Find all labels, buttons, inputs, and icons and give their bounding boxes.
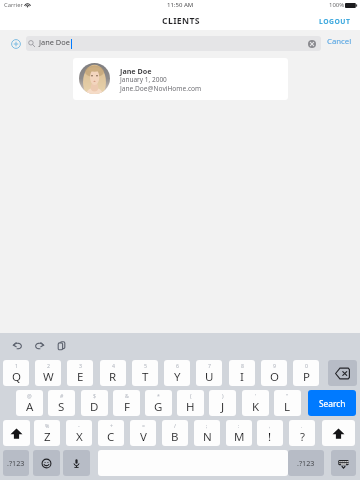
button[interactable]: Undo: [11, 339, 24, 352]
staticText: Carrier: [4, 1, 23, 9]
button[interactable]: ': [242, 390, 269, 416]
button[interactable]: .?123: [288, 450, 324, 476]
staticText: T: [142, 369, 149, 385]
staticText: D: [90, 399, 99, 415]
staticText: Search: [319, 398, 346, 409]
button[interactable]: 4: [100, 360, 126, 386]
button[interactable]: 8: [229, 360, 255, 386]
staticText: I: [240, 369, 244, 385]
staticText: $: [93, 392, 96, 399]
staticText: Jane.Doe@NoviHome.com: [120, 84, 202, 93]
staticText: U: [205, 369, 214, 385]
staticText: 8: [241, 362, 244, 369]
button[interactable]: 3: [67, 360, 93, 386]
staticText: 9: [273, 362, 276, 369]
button[interactable]: Backspace: [328, 360, 357, 386]
staticText: !: [268, 429, 272, 445]
button[interactable]: ): [209, 390, 236, 416]
button[interactable]: Add client: [10, 38, 21, 49]
staticText: ?: [300, 429, 305, 445]
button[interactable]: :: [226, 420, 252, 446]
staticText: Y: [174, 369, 181, 385]
button[interactable]: 9: [261, 360, 287, 386]
staticText: R: [109, 369, 117, 385]
button[interactable]: .: [289, 420, 315, 446]
staticText: ): [222, 392, 224, 399]
staticText: V: [140, 429, 147, 445]
button[interactable]: Search: [308, 390, 356, 416]
button[interactable]: Clear text: [308, 40, 316, 48]
staticText: Jane Doe: [120, 66, 152, 76]
staticText: M: [234, 429, 245, 445]
staticText: X: [76, 429, 83, 445]
staticText: 4: [112, 362, 115, 369]
button[interactable]: Shift: [3, 420, 30, 446]
staticText: 6: [176, 362, 179, 369]
button[interactable]: Jane Doe: [26, 36, 321, 51]
staticText: Cancel: [327, 36, 352, 47]
button[interactable]: 6: [164, 360, 190, 386]
staticText: LOGOUT: [319, 17, 351, 26]
staticText: H: [186, 399, 195, 415]
button[interactable]: *: [145, 390, 172, 416]
staticText: CLIENTS: [162, 15, 200, 27]
button[interactable]: LOGOUT: [319, 17, 351, 26]
button[interactable]: -: [66, 420, 92, 446]
staticText: W: [43, 369, 54, 385]
button[interactable]: ,: [257, 420, 283, 446]
button[interactable]: (: [177, 390, 204, 416]
button[interactable]: 5: [132, 360, 158, 386]
staticText: C: [107, 429, 115, 445]
button[interactable]: @: [16, 390, 43, 416]
staticText: (: [190, 392, 192, 399]
staticText: /: [174, 422, 176, 429]
button[interactable]: ;: [194, 420, 220, 446]
button[interactable]: Redo: [33, 339, 46, 352]
button[interactable]: .?123: [3, 450, 29, 476]
button[interactable]: 0: [293, 360, 319, 386]
staticText: 11:50 AM: [167, 1, 194, 9]
staticText: S: [58, 399, 65, 415]
staticText: January 1, 2000: [120, 75, 167, 84]
button[interactable]: /: [162, 420, 188, 446]
button[interactable]: Jane Doe: [73, 58, 288, 100]
button[interactable]: Cancel: [327, 36, 352, 47]
staticText: F: [124, 399, 130, 415]
staticText: J: [221, 399, 225, 415]
staticText: ,: [269, 422, 271, 429]
button[interactable]: Emoji: [33, 450, 60, 476]
staticText: Q: [12, 369, 21, 385]
button[interactable]: +: [98, 420, 124, 446]
staticText: G: [154, 399, 163, 415]
staticText: .?123: [297, 458, 315, 468]
button[interactable]: %: [34, 420, 60, 446]
button[interactable]: #: [48, 390, 75, 416]
staticText: Jane Doe: [39, 37, 70, 47]
staticText: B: [171, 429, 179, 445]
staticText: 100%: [329, 1, 345, 9]
staticText: .: [301, 422, 303, 429]
staticText: 2: [47, 362, 50, 369]
staticText: +: [110, 422, 113, 429]
button[interactable]: $: [81, 390, 108, 416]
button[interactable]: Paste: [55, 339, 68, 352]
staticText: 5: [144, 362, 147, 369]
staticText: 1: [15, 362, 18, 369]
button[interactable]: ": [274, 390, 301, 416]
staticText: @: [27, 392, 32, 399]
staticText: L: [284, 399, 291, 415]
button[interactable]: =: [130, 420, 156, 446]
button[interactable]: 7: [196, 360, 222, 386]
button[interactable]: &: [113, 390, 140, 416]
staticText: N: [203, 429, 212, 445]
staticText: E: [77, 369, 84, 385]
staticText: P: [303, 369, 310, 385]
button[interactable]: 1: [3, 360, 29, 386]
button[interactable]: Shift: [322, 420, 355, 446]
button[interactable]: 2: [35, 360, 61, 386]
staticText: &: [125, 392, 129, 399]
staticText: -: [78, 422, 80, 429]
button[interactable]: Hide keyboard: [331, 450, 356, 476]
button[interactable]: Dictation: [63, 450, 90, 476]
